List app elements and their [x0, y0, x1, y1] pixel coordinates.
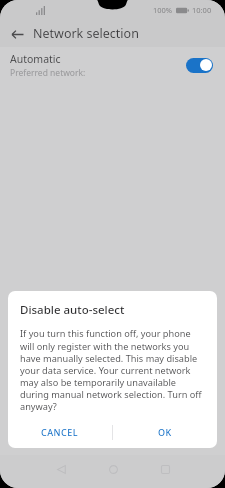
button[interactable]: Back [6, 23, 28, 45]
staticText: Disable auto-select [20, 302, 125, 318]
staticText: Automatic [10, 52, 61, 66]
staticText: Preferred network: [10, 67, 86, 79]
button[interactable]: OK [113, 419, 217, 445]
staticText: OK [158, 426, 172, 438]
staticText: Network selection [33, 25, 139, 42]
staticText: CANCEL [41, 426, 79, 438]
button[interactable]: Automatic [0, 47, 225, 83]
staticText: 100% [153, 5, 173, 15]
button[interactable]: CANCEL [8, 419, 112, 445]
button[interactable]: Automatic network selection [185, 57, 213, 73]
staticText: 10:00 [192, 5, 212, 15]
staticText: If you turn this function off, your phon… [20, 327, 206, 412]
